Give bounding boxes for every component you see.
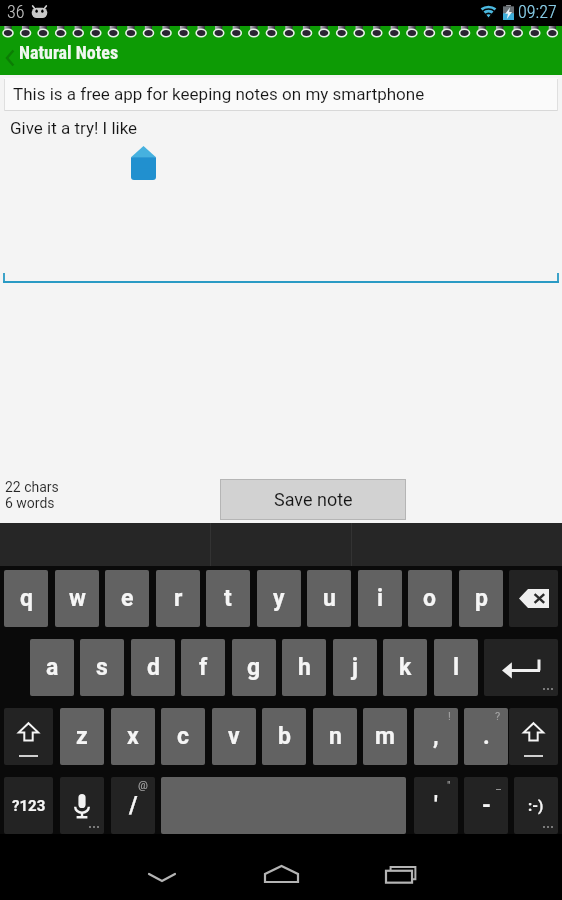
staticText: v bbox=[228, 723, 240, 750]
button[interactable]: h bbox=[282, 639, 326, 696]
button[interactable]: Enter bbox=[484, 639, 558, 696]
button[interactable]: - bbox=[464, 777, 508, 834]
button[interactable]: k bbox=[383, 639, 427, 696]
button[interactable]: n bbox=[313, 708, 357, 765]
staticText: e bbox=[121, 585, 134, 612]
button[interactable]: , bbox=[414, 708, 458, 765]
button[interactable]: b bbox=[262, 708, 306, 765]
staticText: ? bbox=[495, 710, 501, 723]
staticText: ' bbox=[434, 792, 438, 819]
staticText: k bbox=[399, 654, 412, 681]
button[interactable]: f bbox=[181, 639, 225, 696]
staticText: a bbox=[46, 654, 59, 681]
button[interactable]: Voice input bbox=[60, 777, 104, 834]
staticText: 09:27 bbox=[518, 1, 557, 22]
button[interactable]: j bbox=[333, 639, 377, 696]
button[interactable]: s bbox=[80, 639, 124, 696]
staticText: t bbox=[224, 585, 232, 612]
button[interactable]: i bbox=[358, 570, 402, 627]
staticText: 6 words bbox=[5, 495, 55, 511]
staticText: y bbox=[273, 585, 285, 612]
staticText: / bbox=[129, 792, 138, 819]
button[interactable]: e bbox=[105, 570, 149, 627]
button[interactable]: v bbox=[212, 708, 256, 765]
button[interactable]: g bbox=[232, 639, 276, 696]
button[interactable]: m bbox=[363, 708, 407, 765]
staticText: f bbox=[199, 654, 208, 681]
button[interactable]: y bbox=[257, 570, 301, 627]
staticText: g bbox=[247, 654, 261, 681]
button[interactable]: Hide keyboard bbox=[122, 834, 202, 900]
button[interactable]: / bbox=[111, 777, 155, 834]
staticText: z bbox=[76, 723, 88, 750]
button[interactable]: u bbox=[307, 570, 351, 627]
staticText: d bbox=[147, 654, 160, 681]
button[interactable]: w bbox=[55, 570, 99, 627]
staticText: i bbox=[377, 585, 384, 612]
staticText: Give it a try! I like bbox=[10, 118, 138, 138]
staticText: ! bbox=[448, 710, 451, 723]
button[interactable]: p bbox=[459, 570, 503, 627]
staticText: 36 bbox=[7, 1, 25, 22]
staticText: m bbox=[375, 723, 395, 750]
staticText: " bbox=[447, 779, 451, 792]
staticText: . bbox=[483, 723, 490, 750]
button[interactable]: Give it a try! I like bbox=[0, 114, 562, 284]
button[interactable]: z bbox=[60, 708, 104, 765]
button[interactable]: Save note bbox=[220, 479, 406, 520]
staticText: o bbox=[423, 585, 437, 612]
button[interactable]: Shift bbox=[509, 708, 558, 765]
staticText: Natural Notes bbox=[19, 42, 119, 63]
staticText: p bbox=[475, 585, 488, 612]
button[interactable]: . bbox=[464, 708, 508, 765]
staticText: x bbox=[127, 723, 139, 750]
staticText: ?123 bbox=[12, 797, 46, 815]
staticText: _ bbox=[496, 779, 501, 792]
staticText: b bbox=[278, 723, 291, 750]
button[interactable]: Shift bbox=[4, 708, 53, 765]
staticText: s bbox=[96, 654, 108, 681]
button[interactable]: d bbox=[131, 639, 175, 696]
button[interactable]: ' bbox=[414, 777, 458, 834]
staticText: j bbox=[352, 654, 358, 681]
button[interactable]: Navigate up bbox=[0, 44, 20, 72]
button[interactable]: o bbox=[408, 570, 452, 627]
button[interactable]: r bbox=[156, 570, 200, 627]
staticText: u bbox=[323, 585, 336, 612]
staticText: c bbox=[177, 723, 190, 750]
button[interactable]: :-) bbox=[514, 777, 558, 834]
button[interactable]: This is a free app for keeping notes on … bbox=[4, 78, 558, 111]
staticText: n bbox=[329, 723, 342, 750]
staticText: This is a free app for keeping notes on … bbox=[13, 84, 425, 104]
button[interactable]: t bbox=[206, 570, 250, 627]
button[interactable]: Backspace bbox=[509, 570, 558, 627]
staticText: Save note bbox=[274, 489, 353, 510]
button[interactable]: q bbox=[4, 570, 48, 627]
staticText: :-) bbox=[528, 797, 544, 815]
staticText: h bbox=[298, 654, 311, 681]
staticText: q bbox=[20, 585, 33, 612]
button[interactable]: Home bbox=[241, 834, 321, 900]
staticText: - bbox=[482, 792, 491, 819]
staticText: , bbox=[433, 723, 439, 750]
staticText: w bbox=[69, 585, 86, 612]
staticText: @ bbox=[138, 779, 148, 792]
button[interactable]: ?123 bbox=[4, 777, 53, 834]
button[interactable]: Recent apps bbox=[360, 834, 440, 900]
button[interactable]: x bbox=[111, 708, 155, 765]
staticText: l bbox=[453, 654, 460, 681]
staticText: r bbox=[174, 585, 183, 612]
button[interactable]: a bbox=[30, 639, 74, 696]
button[interactable]: l bbox=[434, 639, 478, 696]
staticText: 22 chars bbox=[5, 479, 59, 495]
button[interactable]: c bbox=[161, 708, 205, 765]
